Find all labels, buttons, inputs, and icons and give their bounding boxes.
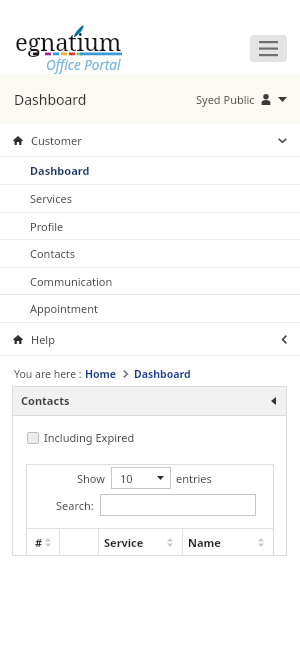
staticText: Search: [56,498,94,513]
staticText: Name [188,535,221,550]
staticText: Help [31,332,55,347]
staticText: Including Expired [44,430,135,445]
staticText: Communication [30,274,113,289]
staticText: Customer [31,133,82,148]
staticText: You are here : [14,367,85,381]
button[interactable]: Service [99,529,183,556]
button[interactable]: Contacts [12,386,287,415]
staticText: Office Portal [46,56,121,74]
staticText: 10 [120,471,133,486]
button[interactable]: # [26,529,60,556]
staticText: Contacts [30,246,76,261]
button[interactable]: Including Expired [27,430,135,445]
button[interactable]: Dashboard [134,367,191,381]
button[interactable] [100,494,256,516]
button[interactable]: Help [0,323,300,355]
staticText: Syed Public [196,92,255,107]
button[interactable]: Services [0,185,300,212]
button[interactable]: Profile [0,213,300,239]
staticText: entries [176,471,212,486]
button[interactable]: Communication [0,268,300,294]
staticText: Service [104,535,144,550]
staticText: Appointment [30,301,99,316]
button[interactable] [60,529,99,556]
button[interactable]: Collapse [267,395,279,407]
staticText: Show [77,471,105,486]
button[interactable]: Dashboard [0,157,300,184]
staticText: Profile [30,219,64,234]
button[interactable]: egnatium [14,24,144,74]
staticText: Services [30,191,72,206]
staticText: egnatium [15,25,121,58]
button[interactable]: Syed Public [196,92,287,107]
button[interactable]: Menu [250,35,287,62]
staticText: Contacts [21,393,70,408]
button[interactable]: Home [85,367,117,381]
button[interactable]: Contacts [0,240,300,267]
staticText: Dashboard [14,90,87,109]
button[interactable]: Customer [0,124,300,156]
staticText: # [35,535,43,550]
button[interactable]: Appointment [0,295,300,322]
staticText: Dashboard [30,163,90,178]
button[interactable]: Name [183,529,274,556]
button[interactable]: 10 [111,467,171,489]
